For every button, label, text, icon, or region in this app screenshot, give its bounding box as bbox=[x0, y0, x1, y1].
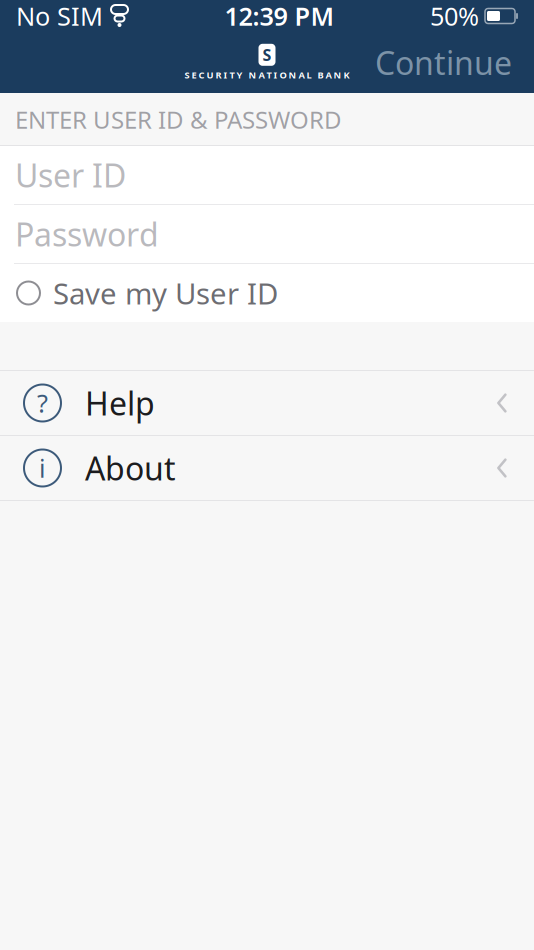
staticText: Password bbox=[15, 213, 159, 255]
staticText: Save my User ID bbox=[53, 273, 278, 312]
staticText: S bbox=[262, 44, 271, 65]
staticText: User ID bbox=[15, 154, 126, 196]
staticText: 12:39 PM bbox=[224, 0, 334, 33]
staticText: Continue bbox=[375, 41, 512, 84]
button[interactable]: Password bbox=[0, 205, 534, 263]
staticText: About bbox=[85, 447, 176, 489]
staticText: i bbox=[39, 451, 46, 485]
button[interactable]: Continue bbox=[361, 33, 526, 92]
staticText: S E C U R I T Y N A T I O N A L B A N K bbox=[184, 69, 349, 81]
staticText: ENTER USER ID & PASSWORD bbox=[15, 104, 342, 135]
button[interactable]: Save my User ID bbox=[0, 264, 534, 322]
staticText: ? bbox=[37, 386, 48, 420]
button[interactable]: User ID bbox=[0, 146, 534, 204]
button[interactable]: i bbox=[0, 436, 534, 500]
staticText: No SIM bbox=[16, 0, 103, 33]
staticText: Help bbox=[85, 382, 155, 424]
button[interactable]: ? bbox=[0, 371, 534, 435]
staticText: 50% bbox=[430, 0, 479, 33]
